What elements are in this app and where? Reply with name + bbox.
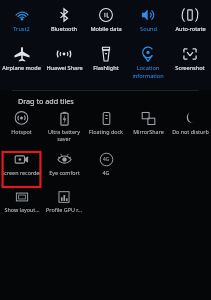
button[interactable]: Location information <box>128 46 168 80</box>
staticText: Sound <box>140 25 157 33</box>
button[interactable]: Flashlight <box>86 46 126 72</box>
staticText: Eye comfort <box>49 169 80 176</box>
staticText: Trust2 <box>13 25 30 33</box>
button[interactable]: Airplane mode <box>1 46 42 72</box>
button[interactable]: Trust2 <box>1 7 42 33</box>
button[interactable]: Do not disturb <box>170 111 210 135</box>
button[interactable]: 4G <box>86 152 126 176</box>
button[interactable]: Sound <box>128 7 168 33</box>
button[interactable]: Profile GPU r… <box>44 190 84 213</box>
staticText: Do not disturb <box>172 128 209 135</box>
staticText: Auto-rotate <box>175 25 206 33</box>
staticText: Flashlight <box>93 64 119 72</box>
button[interactable]: Mobile data <box>86 7 126 33</box>
staticText: Show layout… <box>4 206 40 213</box>
staticText: Hotspot <box>11 128 32 135</box>
button[interactable]: Show layout… <box>1 190 42 213</box>
staticText: Drag to add tiles <box>18 96 74 106</box>
staticText: Profile GPU r… <box>46 206 82 213</box>
button[interactable]: Auto-rotate <box>170 7 210 33</box>
button[interactable]: Screen recorder <box>1 152 42 176</box>
button[interactable]: Ultra battery saver <box>44 111 84 143</box>
staticText: Huawei Share <box>46 64 83 72</box>
staticText: 4G <box>103 156 110 163</box>
button[interactable]: Bluetooth <box>44 7 84 33</box>
staticText: MirrorShare <box>133 128 164 135</box>
staticText: Ultra battery saver <box>44 128 84 143</box>
button[interactable]: Eye comfort <box>44 152 84 176</box>
button[interactable]: MirrorShare <box>128 111 168 135</box>
staticText: Screen recorder <box>1 169 42 176</box>
staticText: Screenshot <box>175 64 205 72</box>
staticText: 4G <box>102 169 110 176</box>
button[interactable]: Huawei Share <box>44 46 84 72</box>
staticText: Floating dock <box>89 128 123 135</box>
button[interactable]: Hotspot <box>1 111 42 135</box>
staticText: Bluetooth <box>51 25 77 33</box>
staticText: Airplane mode <box>2 64 41 72</box>
staticText: Location information <box>128 64 168 80</box>
staticText: Mobile data <box>90 25 122 33</box>
button[interactable]: Screenshot <box>170 46 210 72</box>
button[interactable]: Floating dock <box>86 111 126 135</box>
